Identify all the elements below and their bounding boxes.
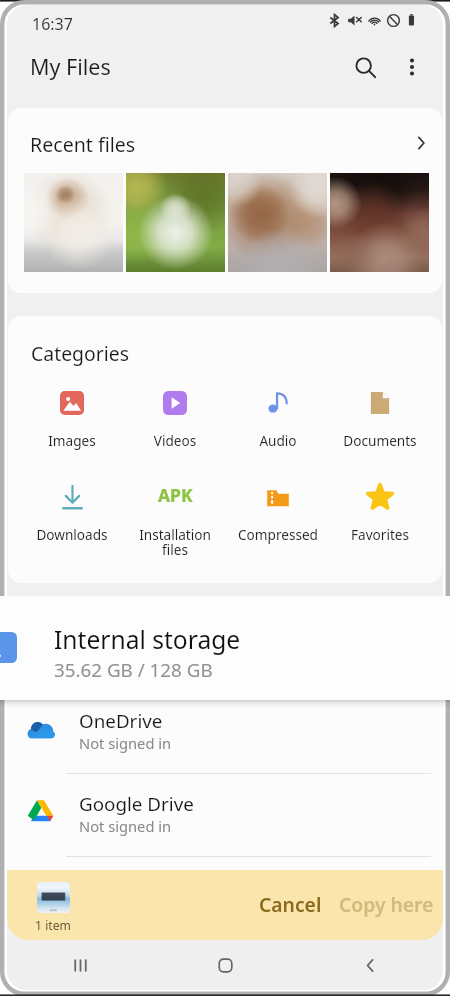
button[interactable]: Back bbox=[298, 940, 443, 990]
staticText: Installation files bbox=[120, 525, 230, 559]
staticText: OneDrive bbox=[79, 708, 163, 734]
staticText: Images bbox=[17, 431, 127, 450]
button[interactable]: Internal storage bbox=[0, 596, 450, 700]
button[interactable] bbox=[24, 377, 120, 451]
button[interactable]: OneDrive bbox=[7, 700, 443, 781]
button[interactable]: Google Drive bbox=[7, 783, 443, 864]
button[interactable]: Copy here bbox=[331, 883, 441, 925]
staticText: Google Drive bbox=[79, 791, 194, 817]
staticText: Recent files bbox=[30, 131, 136, 158]
button[interactable]: Recent file 4 bbox=[330, 173, 429, 272]
staticText: Documents bbox=[325, 431, 435, 450]
staticText: 35.62 GB / 128 GB bbox=[54, 657, 213, 683]
staticText: My Files bbox=[30, 52, 111, 81]
button[interactable]: Cancel bbox=[245, 883, 335, 925]
staticText: Not signed in bbox=[79, 816, 172, 836]
button[interactable]: Recent files bbox=[8, 108, 442, 170]
staticText: Downloads bbox=[17, 525, 127, 544]
staticText: Not signed in bbox=[79, 733, 172, 753]
button[interactable] bbox=[127, 377, 223, 451]
button[interactable]: Recents bbox=[7, 940, 153, 990]
staticText: Audio bbox=[223, 431, 333, 450]
button[interactable]: Recent file 1 bbox=[24, 173, 123, 272]
staticText: Copy here bbox=[339, 891, 434, 917]
staticText: 16:37 bbox=[32, 13, 73, 35]
button[interactable]: Search bbox=[343, 45, 387, 89]
button[interactable]: More options bbox=[390, 45, 434, 89]
button[interactable] bbox=[24, 470, 120, 544]
staticText: Categories bbox=[31, 340, 129, 366]
button[interactable]: Selected item bbox=[23, 880, 83, 932]
staticText: APK bbox=[158, 483, 193, 507]
button[interactable]: Recent file 3 bbox=[228, 173, 327, 272]
staticText: Videos bbox=[120, 431, 230, 450]
button[interactable] bbox=[230, 377, 326, 451]
staticText: Favorites bbox=[325, 525, 435, 544]
button[interactable] bbox=[332, 377, 428, 451]
button[interactable] bbox=[230, 472, 326, 546]
button[interactable]: Home bbox=[153, 940, 298, 990]
button[interactable] bbox=[332, 470, 428, 544]
staticText: 1 item bbox=[23, 917, 83, 934]
staticText: Internal storage bbox=[54, 623, 241, 657]
staticText: Cancel bbox=[259, 891, 322, 917]
button[interactable]: APK bbox=[127, 471, 223, 545]
button[interactable]: Recent file 2 bbox=[126, 173, 225, 272]
staticText: Compressed bbox=[223, 525, 333, 544]
